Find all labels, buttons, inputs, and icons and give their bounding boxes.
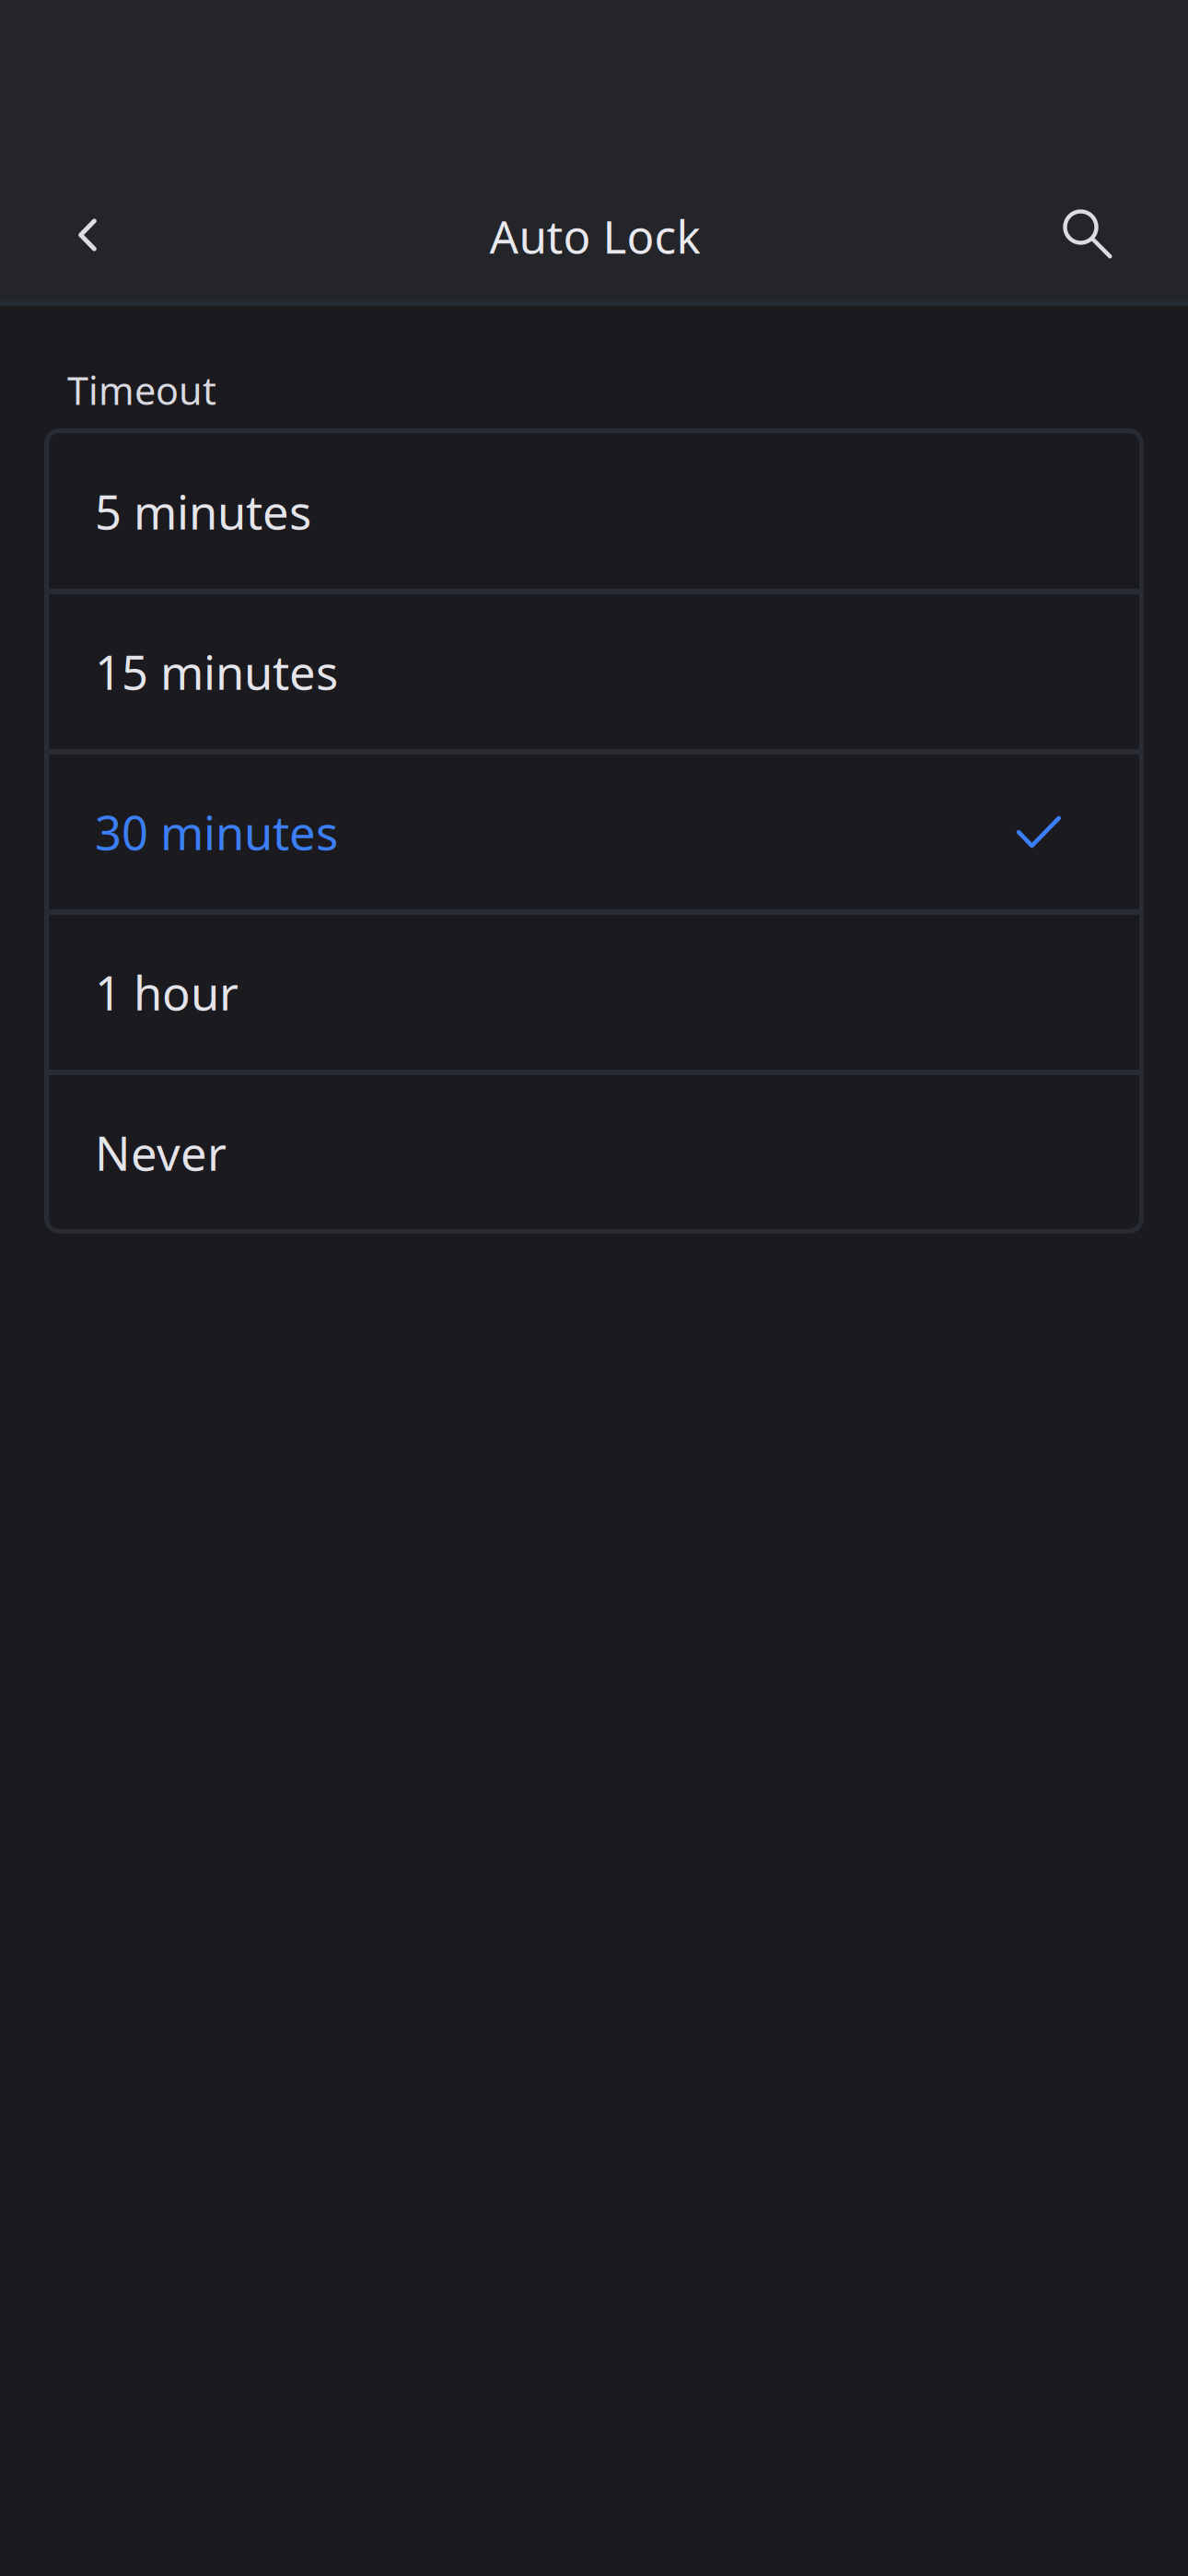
staticText: Never [95, 1122, 227, 1184]
button[interactable]: Search [1032, 179, 1143, 289]
button[interactable]: 5 minutes [44, 434, 1144, 589]
staticText: 5 minutes [95, 480, 311, 542]
button[interactable]: 1 hour [44, 915, 1144, 1070]
staticText: 1 hour [95, 961, 239, 1023]
button[interactable]: Never [44, 1075, 1144, 1230]
staticText: Auto Lock [489, 206, 700, 266]
staticText: Timeout [67, 365, 216, 415]
staticText: 15 minutes [95, 641, 338, 703]
button[interactable]: 30 minutes [44, 755, 1144, 909]
button[interactable]: Back [32, 180, 143, 290]
button[interactable]: 15 minutes [44, 594, 1144, 749]
staticText: 30 minutes [95, 801, 338, 863]
